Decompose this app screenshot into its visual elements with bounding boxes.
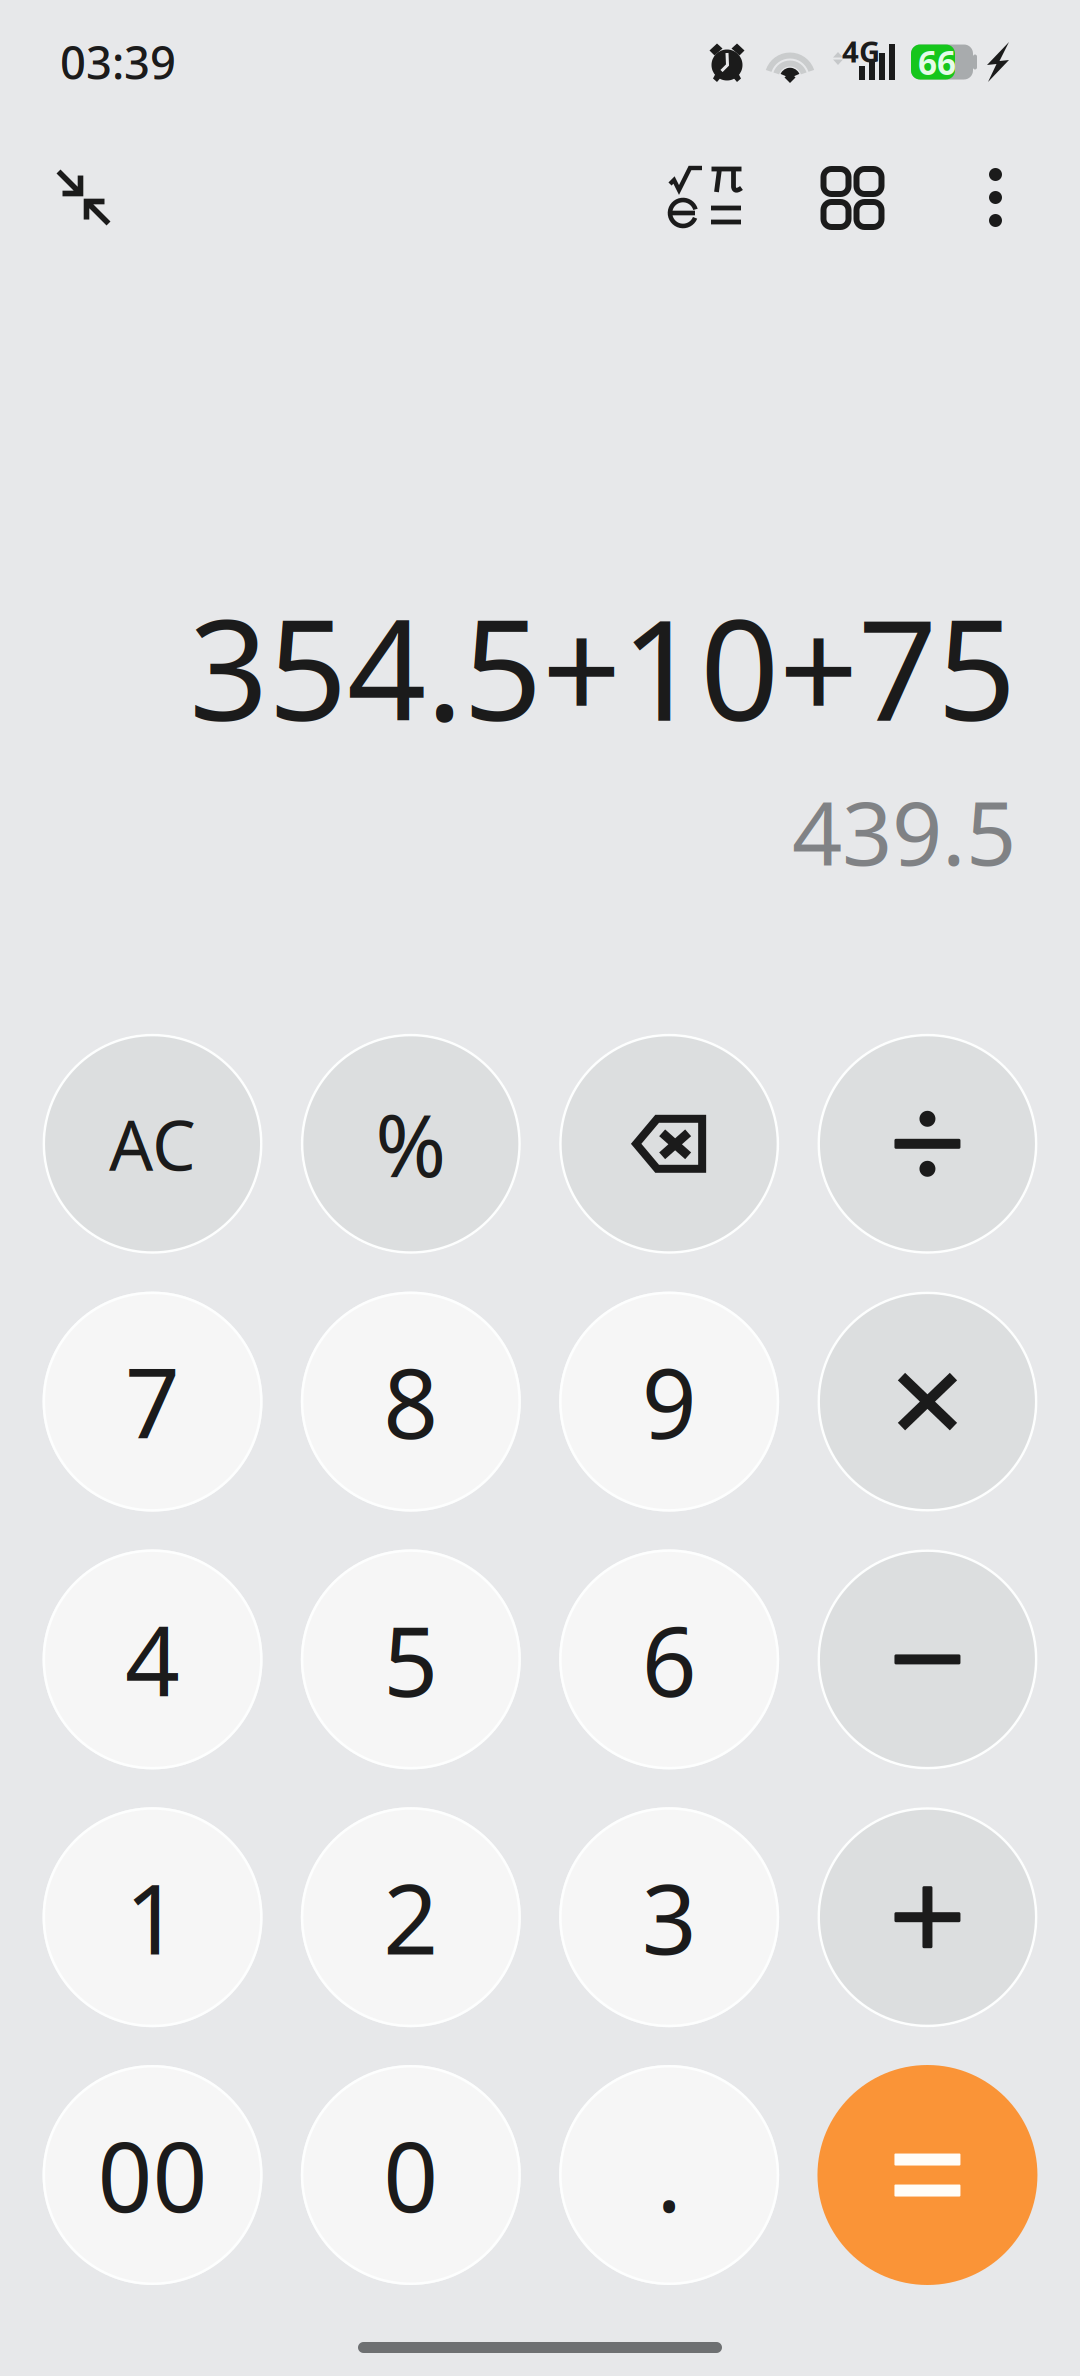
staticText: 8 [383,1338,438,1465]
button[interactable]: 5 [301,1549,521,1769]
button[interactable]: 8 [301,1292,521,1512]
button[interactable]: % [301,1034,521,1254]
button[interactable]: Plus [817,1807,1037,2027]
button[interactable]: Collapse [27,141,139,253]
button[interactable]: Minus [817,1549,1037,1769]
button[interactable]: Divide [817,1034,1037,1254]
button[interactable]: 4 [43,1549,263,1769]
staticText: 7 [125,1338,180,1465]
staticText: 0 [383,2111,438,2239]
staticText: 00 [98,2111,208,2239]
button[interactable]: Equals [817,2065,1037,2285]
staticText: 3 [642,1853,697,1981]
staticText: 439.5 [792,773,1016,890]
staticText: 4 [125,1596,180,1723]
button[interactable]: 7 [43,1292,263,1512]
staticText: % [375,1087,446,1200]
button[interactable]: Scientific calculator [654,143,762,251]
staticText: 1 [125,1853,180,1981]
button[interactable]: 0 [301,2065,521,2285]
staticText: . [656,2111,682,2239]
staticText: 4G [842,31,880,70]
button[interactable]: 6 [559,1549,779,1769]
staticText: 5 [383,1596,438,1723]
button[interactable]: 9 [559,1292,779,1512]
staticText: 9 [642,1338,697,1465]
button[interactable]: 00 [43,2065,263,2285]
staticText: 354.5+10+75 [189,575,1016,759]
button[interactable]: . [559,2065,779,2285]
button[interactable]: 2 [301,1807,521,2027]
button[interactable]: 3 [559,1807,779,2027]
staticText: 6 [642,1596,697,1723]
staticText: AC [109,1098,196,1190]
button[interactable]: 1 [43,1807,263,2027]
button[interactable]: Converters [798,144,906,252]
staticText: 03:39 [60,32,176,92]
staticText: 66 [918,40,956,84]
button[interactable]: Backspace [559,1034,779,1254]
staticText: 2 [383,1853,438,1981]
button[interactable]: More options [950,143,1040,251]
button[interactable]: AC [43,1034,263,1254]
button[interactable]: Multiply [817,1292,1037,1512]
